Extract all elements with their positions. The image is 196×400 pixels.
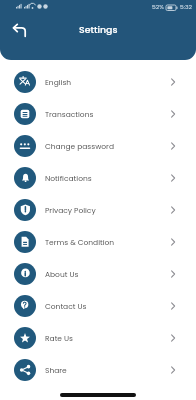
button[interactable]: Share [0, 354, 196, 386]
staticText: 52% [152, 3, 164, 11]
button[interactable]: Transactions [0, 98, 196, 130]
staticText: English [45, 77, 72, 87]
staticText: Settings [79, 23, 118, 36]
staticText: Privacy Policy [45, 205, 96, 215]
button[interactable]: English [0, 66, 196, 98]
button[interactable]: Notifications [0, 162, 196, 194]
staticText: Contact Us [45, 301, 87, 311]
button[interactable]: Contact Us [0, 290, 196, 322]
staticText: Change password [45, 141, 114, 151]
button[interactable]: Rate Us [0, 322, 196, 354]
staticText: 5:32 [180, 3, 193, 11]
button[interactable]: Terms & Condition [0, 226, 196, 258]
staticText: About Us [45, 269, 79, 279]
staticText: Transactions [45, 109, 94, 119]
button[interactable]: Back [9, 18, 29, 38]
staticText: Notifications [45, 173, 92, 183]
button[interactable]: About Us [0, 258, 196, 290]
staticText: Terms & Condition [45, 237, 115, 247]
button[interactable]: Change password [0, 130, 196, 162]
button[interactable]: Privacy Policy [0, 194, 196, 226]
staticText: Rate Us [45, 333, 73, 343]
staticText: Share [45, 365, 67, 375]
